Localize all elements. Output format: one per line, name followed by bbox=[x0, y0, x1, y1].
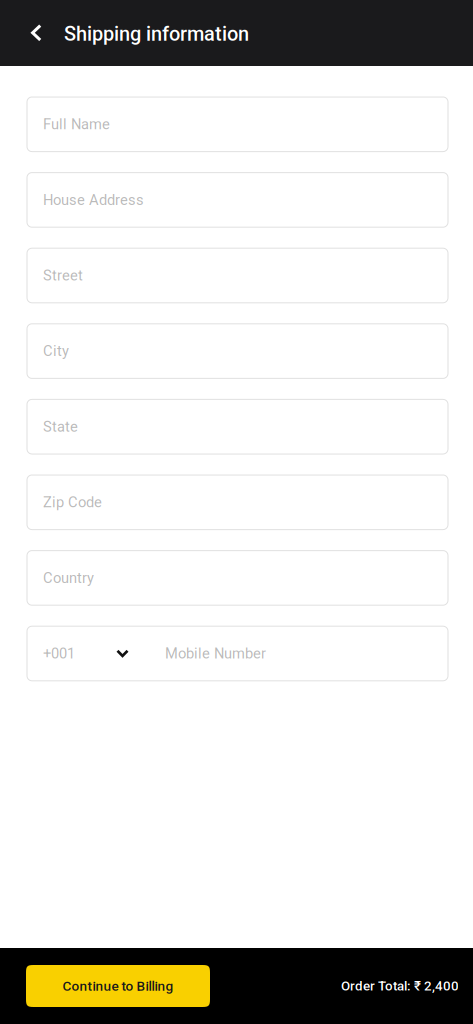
staticText: Order Total: ₹ 2,400 bbox=[341, 978, 459, 994]
staticText: Continue to Billing bbox=[62, 978, 173, 994]
staticText: State bbox=[43, 418, 78, 435]
button[interactable]: Continue to Billing bbox=[26, 965, 210, 1007]
staticText: Shipping information bbox=[64, 22, 249, 46]
staticText: Street bbox=[43, 267, 83, 284]
staticText: Mobile Number bbox=[165, 645, 266, 662]
button[interactable]: Street bbox=[27, 248, 448, 303]
button[interactable]: State bbox=[27, 399, 448, 454]
button[interactable]: Zip Code bbox=[27, 475, 448, 530]
button[interactable]: +001 bbox=[27, 626, 448, 681]
staticText: House Address bbox=[43, 191, 144, 208]
button[interactable]: City bbox=[27, 324, 448, 378]
button[interactable]: Full Name bbox=[27, 97, 448, 152]
staticText: Full Name bbox=[43, 116, 110, 133]
staticText: +001 bbox=[43, 645, 75, 662]
staticText: Country bbox=[43, 569, 94, 586]
button[interactable]: Country bbox=[27, 551, 448, 605]
button[interactable]: Back bbox=[0, 0, 42, 66]
staticText: City bbox=[43, 342, 69, 360]
button[interactable]: House Address bbox=[27, 173, 448, 227]
staticText: Zip Code bbox=[43, 494, 102, 511]
